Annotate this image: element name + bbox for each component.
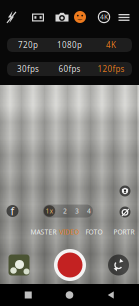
staticText: 4K <box>100 13 108 21</box>
button[interactable]: Aspect ratio <box>27 6 49 28</box>
staticText: 720p <box>18 40 38 50</box>
staticText: 2 <box>63 207 67 215</box>
button[interactable]: Beauty filter <box>69 6 91 28</box>
staticText: 1080p <box>57 40 82 50</box>
staticText: 120fps <box>98 64 125 74</box>
staticText: f <box>10 204 14 218</box>
staticText: PORTR <box>113 228 134 236</box>
button[interactable]: FOTO <box>85 226 103 238</box>
button[interactable]: 2 <box>61 204 68 217</box>
button[interactable]: Resolution 4K <box>93 6 115 28</box>
button[interactable]: Privacy <box>119 185 130 196</box>
button[interactable]: HDR <box>51 6 73 28</box>
staticText: 4K <box>106 40 116 50</box>
button[interactable]: 1080p <box>49 38 90 52</box>
staticText: 4 <box>87 207 91 215</box>
button[interactable]: Home <box>56 284 82 306</box>
button[interactable]: Recent apps <box>15 284 41 306</box>
button[interactable]: Filters <box>119 206 130 217</box>
button[interactable]: PORTR <box>113 226 135 238</box>
button[interactable]: 1x <box>44 205 55 217</box>
button[interactable]: 4 <box>85 204 92 217</box>
button[interactable]: Record video <box>54 249 86 281</box>
staticText: 3 <box>75 207 79 215</box>
staticText: 30fps <box>17 64 39 74</box>
button[interactable]: VIDEO <box>58 226 79 238</box>
button[interactable]: 120fps <box>90 62 132 76</box>
button[interactable]: Open gallery <box>8 254 29 275</box>
staticText: 1x <box>45 207 53 215</box>
button[interactable]: 3 <box>73 204 80 217</box>
button[interactable]: 4K <box>90 38 132 52</box>
button[interactable]: More settings <box>113 6 135 28</box>
button[interactable]: 60fps <box>49 62 90 76</box>
button[interactable]: Aperture f-stop <box>6 205 18 217</box>
button[interactable]: Flash off <box>0 6 22 28</box>
button[interactable]: Back <box>98 284 124 306</box>
button[interactable]: MASTER <box>30 226 57 238</box>
button[interactable]: Switch camera <box>108 254 129 275</box>
staticText: VIDEO <box>59 228 79 236</box>
staticText: MASTER <box>30 228 56 236</box>
button[interactable]: 720p <box>7 38 49 52</box>
button[interactable]: 30fps <box>7 62 49 76</box>
staticText: FOTO <box>85 228 102 236</box>
staticText: 60fps <box>58 64 80 74</box>
